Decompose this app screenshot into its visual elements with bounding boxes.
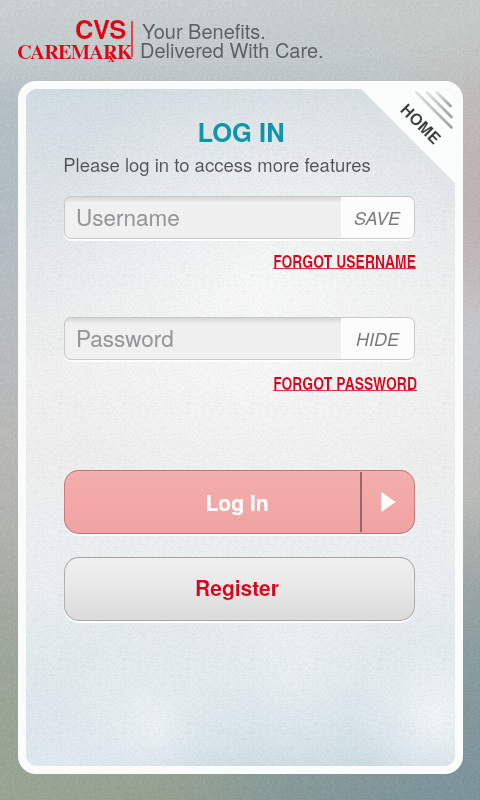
staticText: HIDE xyxy=(356,326,400,351)
button[interactable]: Log In xyxy=(64,470,415,534)
staticText: Password xyxy=(76,321,174,353)
staticText: Delivered With Care. xyxy=(140,35,324,64)
staticText: x xyxy=(108,47,115,66)
staticText: Register xyxy=(175,572,299,602)
button[interactable]: SAVE xyxy=(341,197,414,238)
staticText: LOG IN xyxy=(41,113,441,150)
button[interactable]: Password xyxy=(64,317,415,360)
staticText: SAVE xyxy=(354,205,401,230)
staticText: Please log in to access more features xyxy=(26,151,417,177)
staticText: CVS xyxy=(75,10,127,47)
staticText: Log In xyxy=(187,487,287,517)
staticText: FORGOT USERNAME xyxy=(156,249,416,273)
staticText: CAREMARK xyxy=(17,36,132,66)
button[interactable]: FORGOT PASSWORD xyxy=(157,371,417,395)
button[interactable]: Username xyxy=(64,196,415,239)
button[interactable]: HIDE xyxy=(341,318,414,359)
button[interactable]: FORGOT USERNAME xyxy=(156,249,416,273)
staticText: HOME xyxy=(396,98,447,150)
staticText: Your Benefits. xyxy=(142,16,266,45)
staticText: FORGOT PASSWORD xyxy=(157,371,417,395)
button[interactable]: Home xyxy=(351,89,455,193)
staticText: Username xyxy=(76,200,180,232)
button[interactable]: Register xyxy=(64,557,415,621)
